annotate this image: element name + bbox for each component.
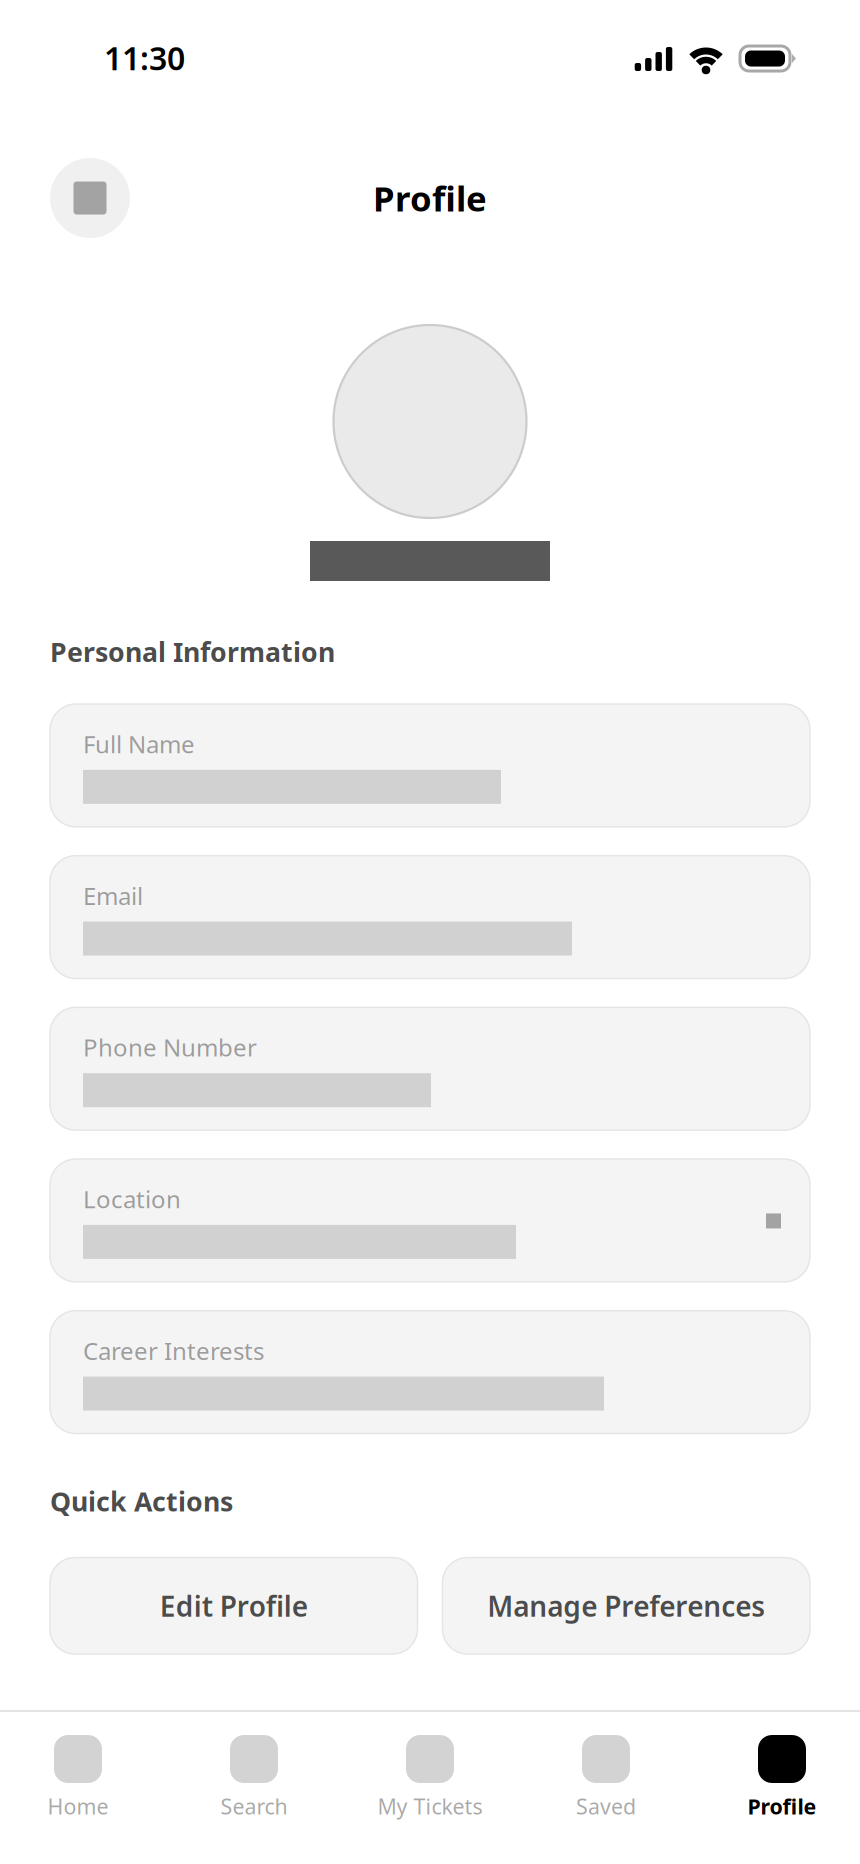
- button[interactable]: My Tickets: [342, 1735, 518, 1820]
- button[interactable]: Phone Number: [50, 1007, 810, 1130]
- button[interactable]: Profile: [694, 1735, 860, 1820]
- button[interactable]: Location: [50, 1159, 810, 1282]
- button[interactable]: Email: [50, 856, 810, 979]
- staticText: Saved: [576, 1792, 636, 1820]
- button[interactable]: Back: [50, 158, 130, 238]
- staticText: Home: [47, 1792, 108, 1820]
- staticText: Career Interests: [83, 1335, 264, 1367]
- button[interactable]: Saved: [518, 1735, 694, 1820]
- staticText: Personal Information: [50, 634, 335, 669]
- button[interactable]: Career Interests: [50, 1311, 810, 1434]
- staticText: Edit Profile: [160, 1587, 308, 1624]
- staticText: Phone Number: [83, 1031, 257, 1063]
- staticText: Full Name: [83, 728, 195, 760]
- staticText: Location: [83, 1183, 181, 1215]
- button[interactable]: Search: [166, 1735, 342, 1820]
- staticText: My Tickets: [377, 1792, 482, 1820]
- staticText: Profile: [747, 1792, 816, 1820]
- button[interactable]: Edit Profile: [50, 1558, 417, 1654]
- staticText: Profile: [373, 175, 487, 221]
- button[interactable]: Manage Preferences: [442, 1558, 810, 1654]
- staticText: 11:30: [104, 36, 185, 79]
- staticText: Manage Preferences: [487, 1587, 765, 1624]
- button[interactable]: Home: [0, 1735, 166, 1820]
- button[interactable]: Full Name: [50, 704, 810, 827]
- staticText: Email: [83, 880, 143, 912]
- staticText: Search: [220, 1792, 287, 1820]
- staticText: Quick Actions: [50, 1484, 233, 1519]
